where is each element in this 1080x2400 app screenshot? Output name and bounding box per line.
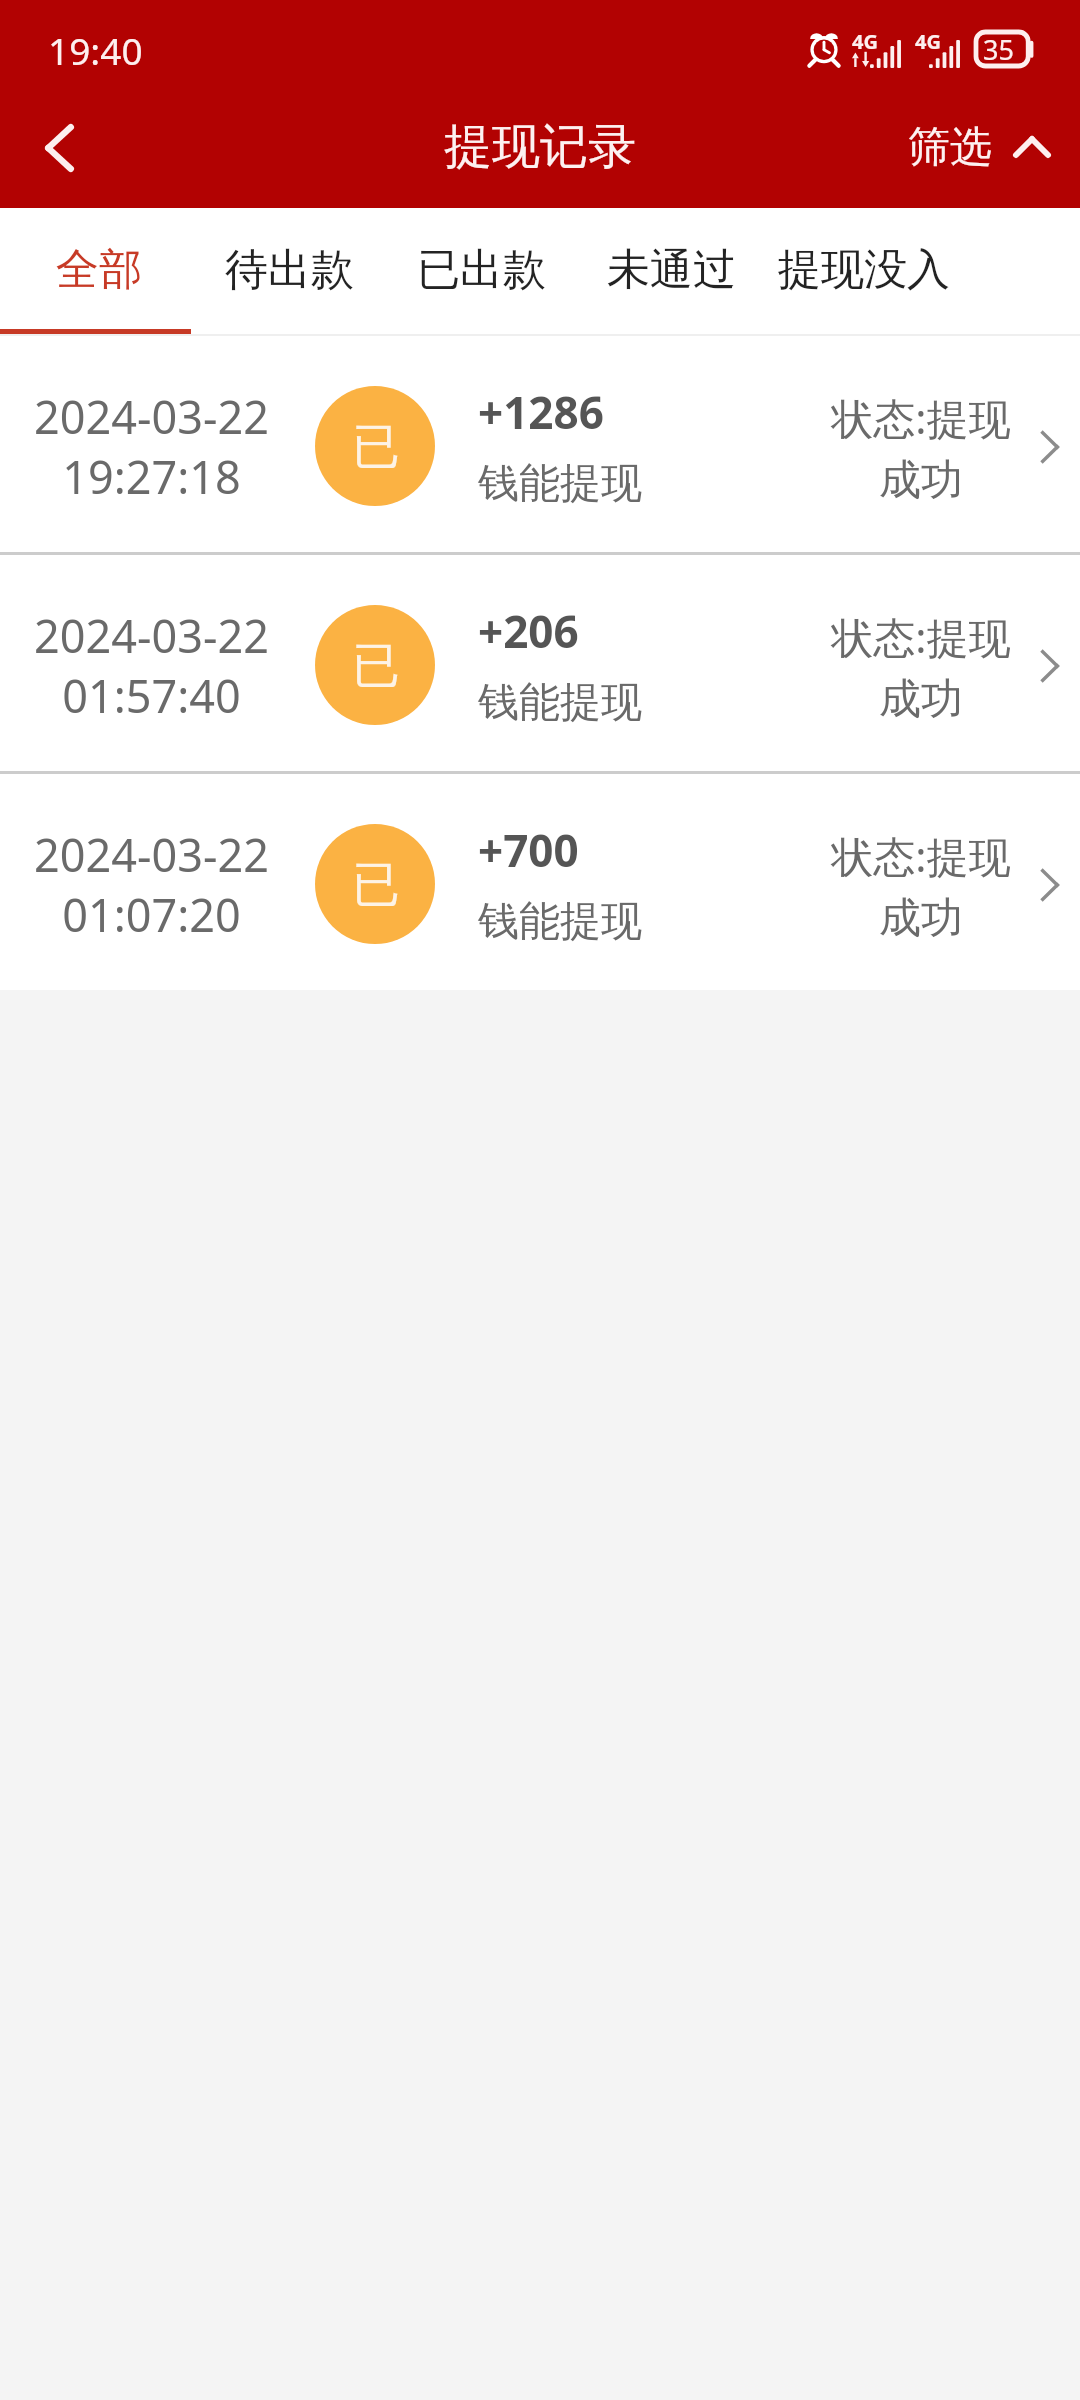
staticText: 钱能提现 — [478, 458, 642, 510]
staticText: 19:40 — [48, 25, 143, 75]
staticText: 待出款 — [225, 243, 354, 297]
button[interactable]: 已出款 — [386, 208, 546, 336]
staticText: 已 — [352, 636, 400, 696]
staticText: 已 — [352, 855, 400, 915]
staticText: +700 — [478, 820, 579, 880]
staticText: +206 — [478, 601, 579, 661]
staticText: 全部 — [56, 243, 142, 297]
staticText: 4G — [915, 28, 941, 55]
button[interactable]: Back — [0, 95, 118, 208]
staticText: 状态:提现 成功 — [826, 389, 1016, 506]
button[interactable]: 2024-03-22 01:07:20 — [0, 774, 1080, 990]
staticText: 钱能提现 — [478, 677, 642, 729]
staticText: 状态:提现 成功 — [826, 608, 1016, 725]
staticText: 2024-03-22 01:07:20 — [34, 824, 269, 945]
button[interactable]: 提现没入 — [757, 208, 950, 336]
staticText: +1286 — [478, 382, 604, 442]
button[interactable]: 2024-03-22 19:27:18 — [0, 336, 1080, 552]
staticText: 提现记录 — [444, 117, 636, 177]
staticText: 状态:提现 成功 — [826, 827, 1016, 944]
staticText: 提现没入 — [778, 243, 950, 297]
staticText: 筛选 — [908, 121, 992, 174]
button[interactable]: 未通过 — [577, 208, 736, 336]
button[interactable]: 全部 — [28, 208, 142, 336]
staticText: 4G — [852, 28, 878, 55]
staticText: 35 — [983, 31, 1014, 65]
staticText: 2024-03-22 19:27:18 — [34, 386, 269, 507]
staticText: 已 — [352, 417, 400, 477]
button[interactable]: 待出款 — [184, 208, 354, 336]
button[interactable]: 筛选 — [884, 95, 1080, 208]
staticText: 未通过 — [607, 243, 736, 297]
staticText: 钱能提现 — [478, 896, 642, 948]
button[interactable]: 2024-03-22 01:57:40 — [0, 555, 1080, 771]
staticText: 2024-03-22 01:57:40 — [34, 605, 269, 726]
staticText: 已出款 — [417, 243, 546, 297]
